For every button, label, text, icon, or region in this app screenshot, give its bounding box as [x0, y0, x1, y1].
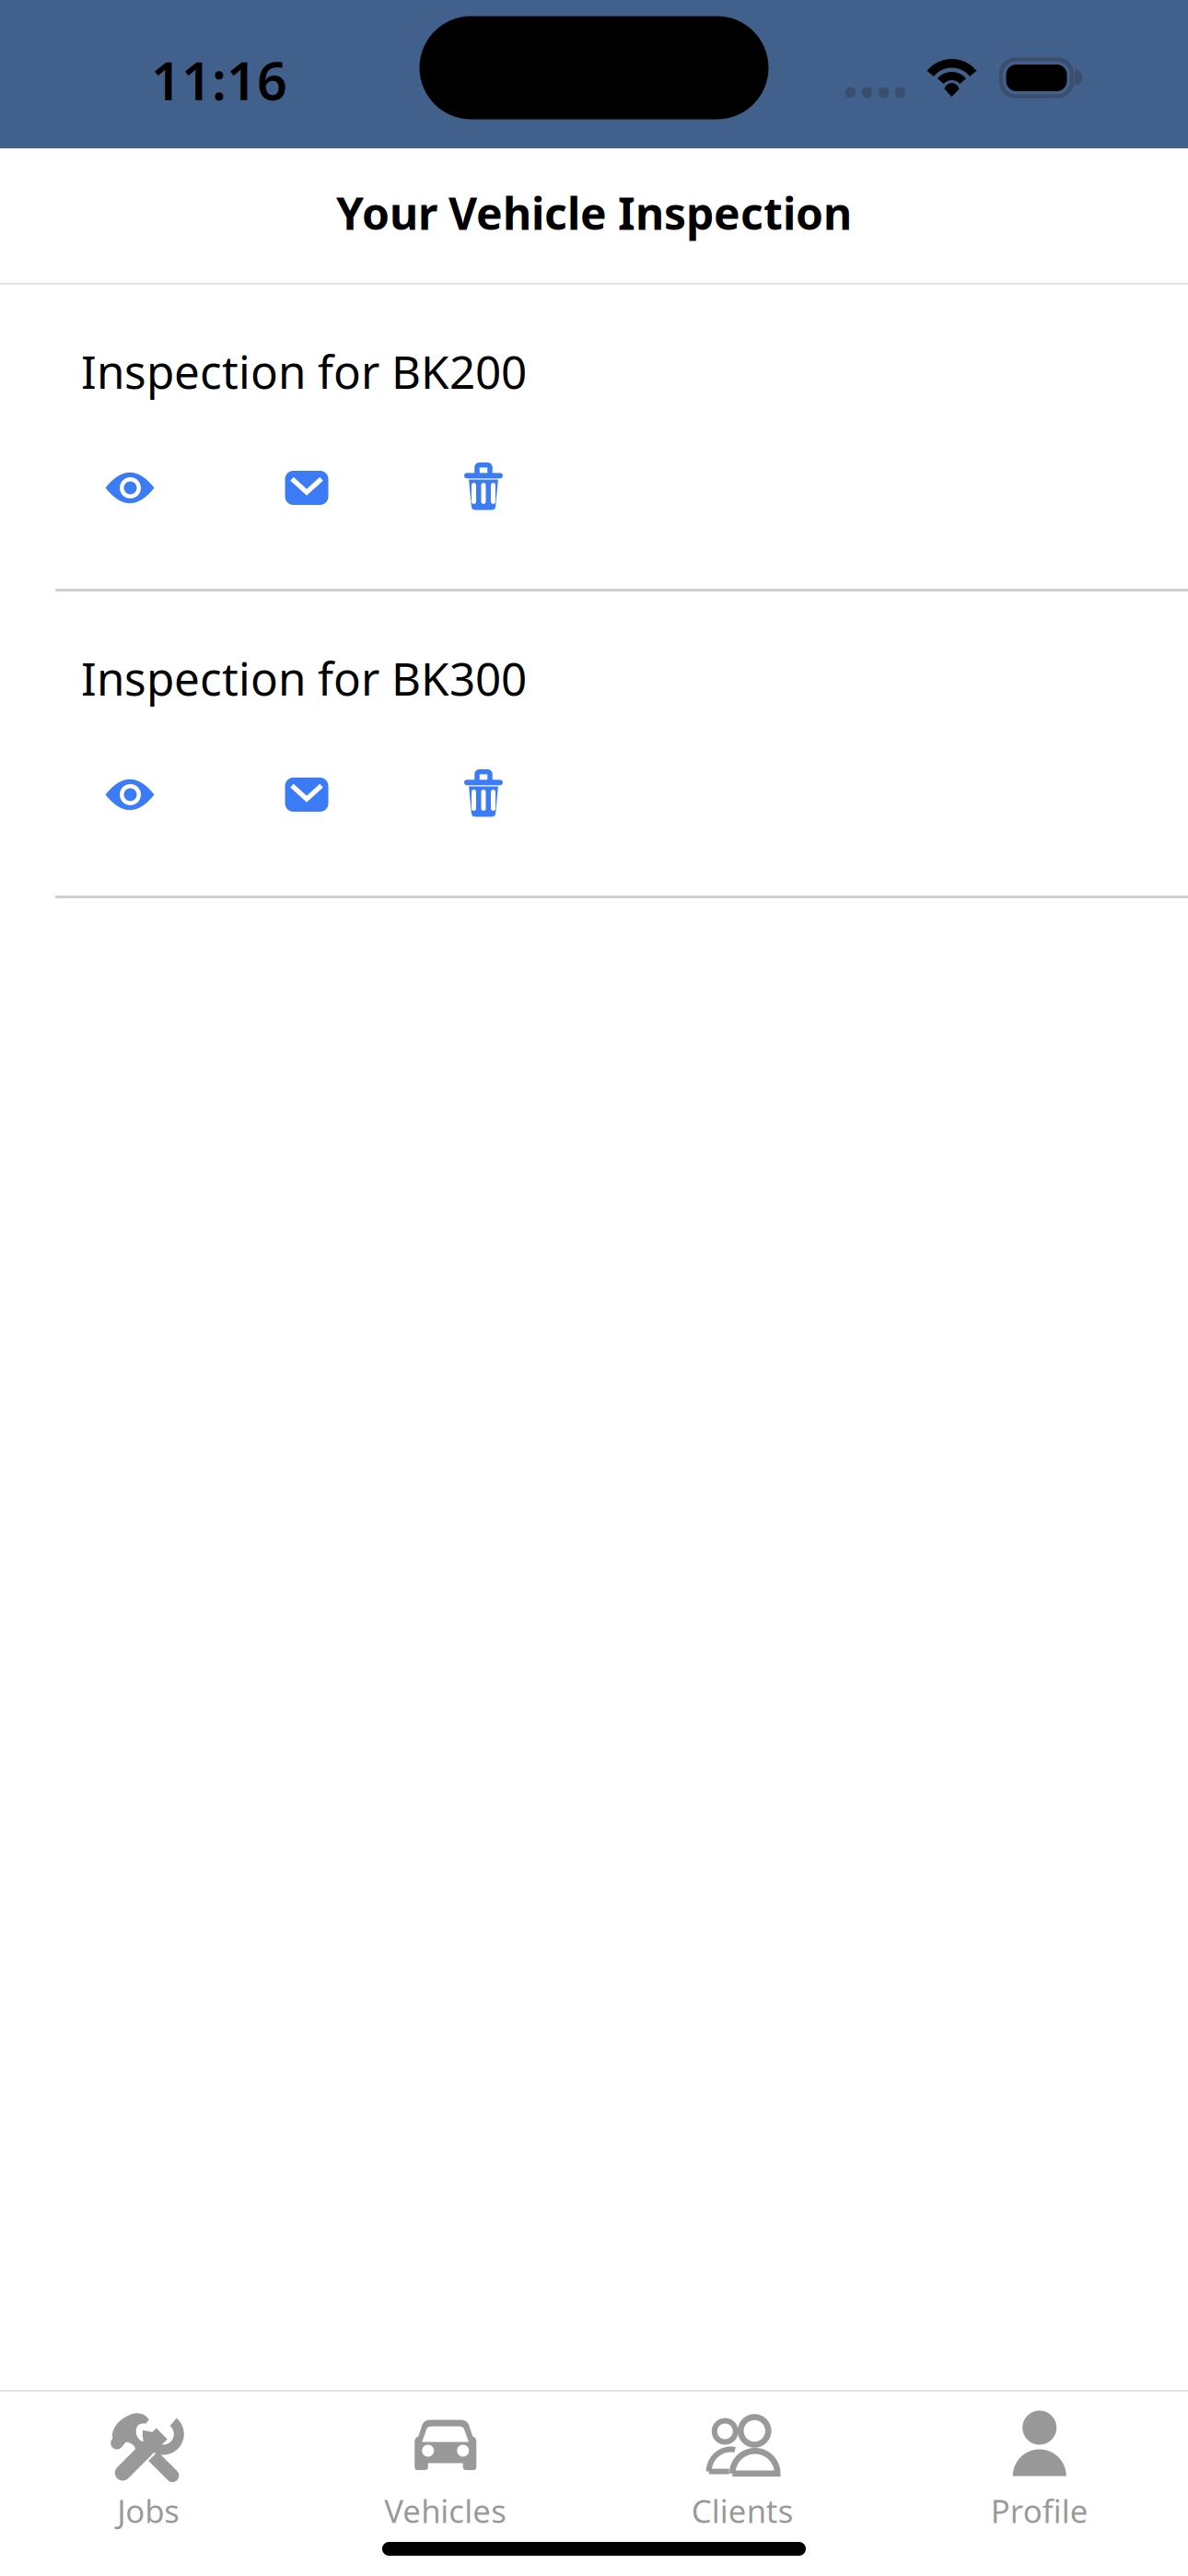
- button[interactable]: View inspection: [41, 442, 218, 534]
- button[interactable]: Delete inspection: [395, 442, 572, 534]
- staticText: Vehicles: [384, 2489, 507, 2532]
- staticText: Profile: [991, 2489, 1088, 2532]
- staticText: Clients: [691, 2489, 794, 2532]
- button[interactable]: Clients: [594, 2392, 891, 2542]
- button[interactable]: Delete inspection: [395, 749, 572, 841]
- button[interactable]: Email inspection: [218, 442, 395, 534]
- staticText: Inspection for BK200: [81, 341, 527, 401]
- staticText: Jobs: [117, 2489, 180, 2532]
- button[interactable]: Vehicles: [297, 2392, 594, 2542]
- staticText: Inspection for BK300: [81, 648, 527, 708]
- button[interactable]: Email inspection: [218, 749, 395, 841]
- button[interactable]: View inspection: [41, 749, 218, 841]
- staticText: Your Vehicle Inspection: [336, 183, 852, 242]
- button[interactable]: Profile: [891, 2392, 1188, 2542]
- staticText: 11:16: [151, 45, 287, 115]
- button[interactable]: Jobs: [0, 2392, 297, 2542]
